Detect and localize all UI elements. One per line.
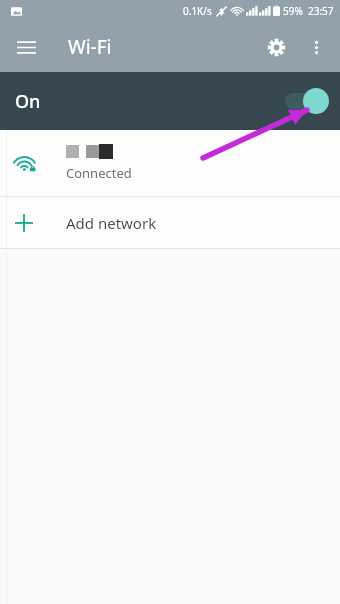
button[interactable]: More options bbox=[296, 27, 336, 67]
staticText: Connected bbox=[66, 164, 132, 182]
staticText: 0.1K/s bbox=[183, 4, 212, 18]
staticText: 59% bbox=[283, 4, 303, 18]
staticText: On bbox=[15, 89, 41, 114]
button[interactable]: On bbox=[0, 72, 340, 130]
staticText: Wi-Fi bbox=[68, 34, 112, 60]
button[interactable]: Wi-Fi settings bbox=[256, 27, 296, 67]
button[interactable]: Open navigation drawer bbox=[8, 29, 44, 65]
staticText: 23:57 bbox=[308, 4, 334, 18]
button[interactable]: Add network bbox=[0, 197, 340, 248]
button[interactable]: Connected bbox=[0, 130, 340, 196]
staticText: Add network bbox=[66, 213, 157, 233]
button[interactable]: Wi-Fi on/off toggle bbox=[285, 88, 329, 114]
